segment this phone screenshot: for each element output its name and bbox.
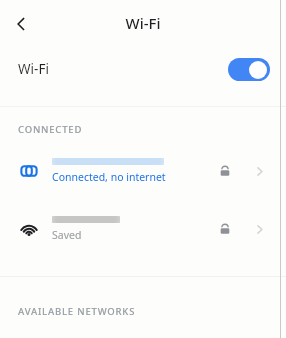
other: Secured network	[216, 162, 234, 180]
staticText: Connected, no internet	[52, 170, 166, 184]
staticText: Saved	[52, 228, 82, 242]
staticText: CONNECTED	[18, 123, 83, 136]
other: Wi-Fi on	[228, 58, 270, 81]
staticText: AVAILABLE NETWORKS	[18, 305, 136, 318]
other: Secured network	[216, 220, 234, 238]
button[interactable]: Connected, no internet	[0, 150, 286, 192]
button[interactable]: Back	[8, 11, 34, 37]
button[interactable]: Network details	[248, 160, 270, 182]
button[interactable]: Network details	[248, 218, 270, 240]
button[interactable]: Wi-Fi	[0, 46, 286, 92]
staticText: Wi-Fi	[0, 13, 286, 33]
staticText: Wi-Fi	[18, 60, 49, 78]
button[interactable]: Saved	[0, 208, 286, 250]
